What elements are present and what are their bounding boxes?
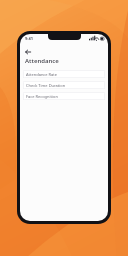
staticText: Attendance — [25, 57, 59, 65]
staticText: 9:41 — [25, 36, 33, 41]
button[interactable]: Face Recognition — [23, 92, 105, 100]
staticText: Attendance Rate — [26, 72, 57, 77]
staticText: Check Time Duration — [26, 83, 66, 88]
button[interactable]: Attendance Rate — [23, 70, 105, 78]
staticText: Face Recognition — [26, 94, 58, 99]
button[interactable]: Back — [22, 46, 33, 57]
button[interactable]: Check Time Duration — [23, 81, 105, 89]
